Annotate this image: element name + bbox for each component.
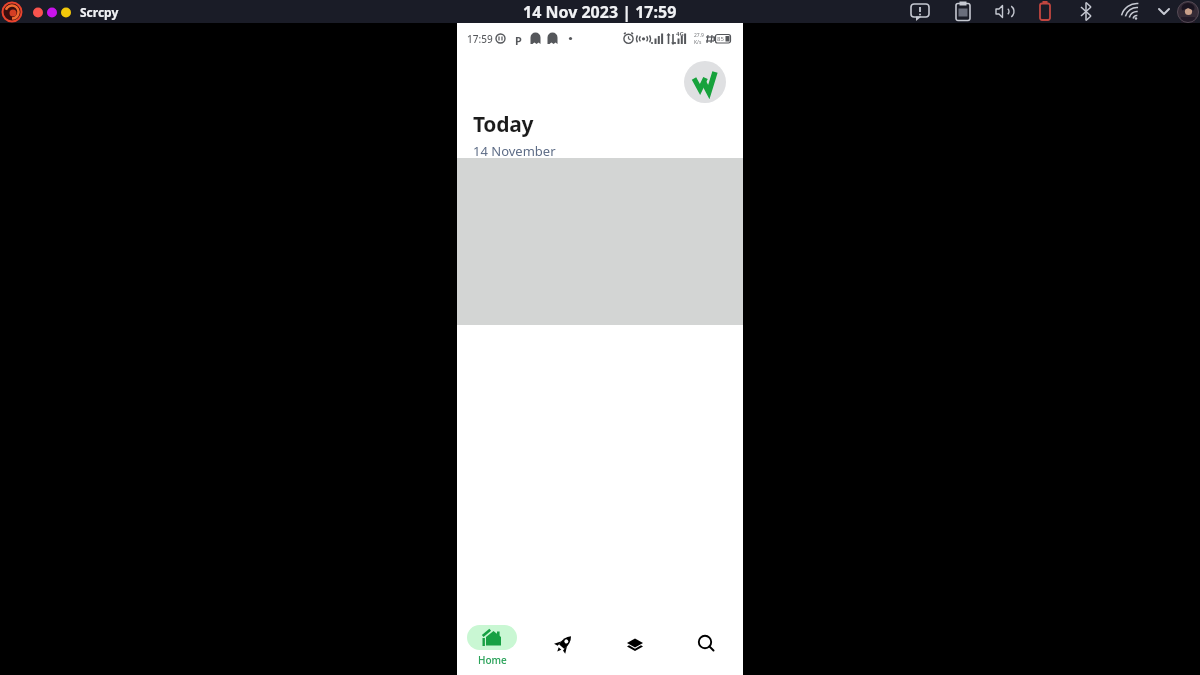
button[interactable] [599,621,670,675]
staticText: 85 [717,35,724,43]
button[interactable]: Home [457,621,528,675]
staticText: Today [473,110,534,139]
staticText: 4G [676,30,684,38]
staticText: P [515,33,522,48]
staticText: 14 November [473,142,556,160]
button[interactable] [528,621,599,675]
button[interactable] [670,621,741,675]
staticText: Scrcpy [80,4,119,20]
staticText: 14 Nov 2023 | 17:59 [523,1,677,23]
staticText: 27.9 K/s [694,32,704,46]
staticText: 17:59 [467,32,493,46]
button[interactable] [684,61,726,103]
staticText: Home [478,653,507,667]
